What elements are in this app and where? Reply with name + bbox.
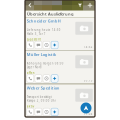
staticText: Übersicht Auslieferung xyxy=(27,11,74,16)
staticText: 11:04 xyxy=(84,112,93,116)
button[interactable]: Call xyxy=(27,108,34,116)
staticText: 09:15 xyxy=(84,79,93,82)
button[interactable]: Back xyxy=(25,0,35,10)
staticText: Müller Logistik xyxy=(27,52,56,57)
staticText: aktiv xyxy=(27,105,34,108)
staticText: Lager Nord xyxy=(27,66,42,69)
staticText: Abholung morgen 08:00 xyxy=(27,62,64,65)
staticText: Lieferung heute 14:30 xyxy=(27,28,61,32)
button[interactable]: Call xyxy=(27,41,34,49)
staticText: Rampe 2, 09:00 Uhr xyxy=(27,99,56,102)
button[interactable]: Message xyxy=(35,75,42,82)
staticText: offen xyxy=(27,71,35,75)
button[interactable]: Navigate xyxy=(51,108,58,116)
button[interactable]: Navigate xyxy=(51,75,58,82)
button[interactable]: Add xyxy=(85,0,95,10)
button[interactable]: Schneider GmbH xyxy=(25,17,95,50)
button[interactable]: History xyxy=(43,41,50,49)
staticText: Halle 3, Tor 7 xyxy=(27,32,46,36)
staticText: Transport bestätigt xyxy=(27,95,52,99)
staticText: zugestellt xyxy=(27,38,41,41)
button[interactable]: Call xyxy=(27,75,34,82)
button[interactable]: History xyxy=(43,75,50,82)
button[interactable]: Müller Logistik xyxy=(25,51,95,84)
button[interactable]: Filter xyxy=(75,0,85,10)
button[interactable]: Message xyxy=(35,41,42,49)
button[interactable]: History xyxy=(43,108,50,116)
staticText: Schneider GmbH xyxy=(27,18,61,24)
button[interactable]: New message xyxy=(79,101,92,114)
button[interactable]: Weber Spedition xyxy=(25,84,95,117)
staticText: Weber Spedition xyxy=(27,85,60,90)
button[interactable]: Message xyxy=(35,108,42,116)
button[interactable]: Navigate xyxy=(51,41,58,49)
staticText: 14:32 xyxy=(84,45,93,49)
